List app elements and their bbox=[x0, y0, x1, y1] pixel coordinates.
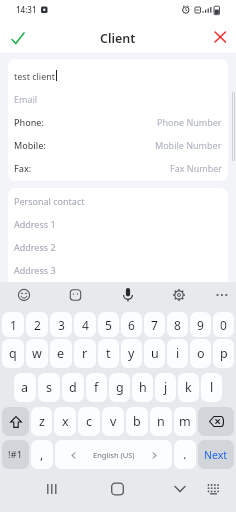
button[interactable]: w bbox=[26, 339, 48, 368]
staticText: 4 bbox=[82, 317, 89, 333]
button[interactable]: Personal contact bbox=[14, 189, 222, 212]
button[interactable]: h bbox=[132, 373, 153, 402]
staticText: h bbox=[139, 379, 147, 396]
staticText: English (US) bbox=[93, 450, 135, 460]
button[interactable]: l bbox=[201, 373, 222, 402]
button[interactable]: k bbox=[178, 373, 199, 402]
button[interactable]: j bbox=[155, 373, 176, 402]
staticText: b bbox=[133, 413, 141, 430]
button[interactable]: Mobile: bbox=[14, 133, 222, 156]
button[interactable]: x bbox=[54, 407, 76, 436]
staticText: Address 1 bbox=[14, 218, 56, 230]
staticText: s bbox=[46, 379, 52, 396]
staticText: Phone: bbox=[14, 116, 44, 128]
button[interactable]: Fax: bbox=[14, 156, 222, 179]
staticText: 9 bbox=[197, 317, 204, 333]
staticText: t bbox=[106, 345, 111, 362]
button[interactable]: Address 1 bbox=[14, 212, 222, 235]
button[interactable]: a bbox=[14, 373, 36, 402]
button[interactable]: 5 bbox=[98, 312, 119, 337]
button[interactable]: y bbox=[121, 339, 142, 368]
staticText: Address 2 bbox=[14, 241, 56, 253]
button[interactable]: c bbox=[78, 407, 100, 436]
staticText: y bbox=[128, 345, 135, 362]
button[interactable]: Address 2 bbox=[14, 235, 222, 258]
staticText: i bbox=[176, 345, 180, 362]
button[interactable]: Next bbox=[198, 440, 234, 469]
staticText: 1 bbox=[10, 317, 17, 333]
button[interactable]: Address 3 bbox=[14, 258, 222, 281]
button[interactable]: 9 bbox=[190, 312, 211, 337]
button[interactable]: e bbox=[50, 339, 72, 368]
staticText: c bbox=[86, 413, 93, 430]
staticText: Address 3 bbox=[14, 264, 56, 276]
staticText: m bbox=[179, 413, 191, 430]
staticText: Client bbox=[100, 30, 136, 47]
button[interactable]: z bbox=[31, 407, 52, 436]
button[interactable]: 6 bbox=[121, 312, 142, 337]
button[interactable]: q bbox=[2, 339, 24, 368]
button[interactable]: f bbox=[86, 373, 107, 402]
staticText: w bbox=[32, 345, 42, 362]
staticText: Phone Number bbox=[157, 116, 222, 128]
staticText: . bbox=[183, 446, 187, 463]
staticText: r bbox=[82, 345, 88, 362]
button[interactable]: Email bbox=[14, 87, 222, 110]
button[interactable]: . bbox=[174, 440, 196, 469]
staticText: a bbox=[21, 379, 29, 396]
staticText: Email bbox=[14, 93, 38, 105]
staticText: 6 bbox=[128, 317, 135, 333]
staticText: 5 bbox=[105, 317, 112, 333]
button[interactable]: u bbox=[144, 339, 165, 368]
staticText: v bbox=[110, 413, 117, 430]
button[interactable]: p bbox=[213, 339, 234, 368]
button[interactable]: , bbox=[31, 440, 53, 469]
staticText: u bbox=[151, 345, 159, 362]
staticText: 3 bbox=[58, 317, 65, 333]
button[interactable]: test client bbox=[14, 64, 222, 87]
button[interactable]: o bbox=[190, 339, 211, 368]
button[interactable] bbox=[214, 31, 227, 43]
staticText: q bbox=[9, 345, 17, 362]
staticText: 0 bbox=[220, 317, 227, 333]
staticText: d bbox=[69, 379, 77, 396]
staticText: 7 bbox=[151, 317, 158, 333]
button[interactable]: t bbox=[98, 339, 119, 368]
button[interactable] bbox=[2, 407, 29, 436]
staticText: Next bbox=[204, 448, 228, 462]
button[interactable]: 0 bbox=[213, 312, 234, 337]
staticText: !#1 bbox=[8, 448, 23, 461]
staticText: e bbox=[57, 345, 65, 362]
button[interactable] bbox=[198, 407, 234, 436]
staticText: n bbox=[157, 413, 165, 430]
staticText: k bbox=[185, 379, 192, 396]
staticText: o bbox=[197, 345, 205, 362]
button[interactable]: 4 bbox=[74, 312, 96, 337]
staticText: 14:31 bbox=[16, 4, 37, 15]
button[interactable]: b bbox=[126, 407, 148, 436]
staticText: z bbox=[39, 413, 45, 430]
staticText: test client bbox=[14, 70, 56, 82]
button[interactable]: n bbox=[150, 407, 172, 436]
button[interactable]: 7 bbox=[144, 312, 165, 337]
button[interactable]: !#1 bbox=[2, 440, 29, 469]
button[interactable]: English (US) bbox=[55, 440, 172, 469]
button[interactable]: 2 bbox=[26, 312, 48, 337]
button[interactable]: r bbox=[74, 339, 96, 368]
button[interactable]: 3 bbox=[50, 312, 72, 337]
staticText: Fax Number bbox=[170, 162, 222, 174]
staticText: 8 bbox=[174, 317, 181, 333]
button[interactable]: v bbox=[102, 407, 124, 436]
staticText: Fax: bbox=[14, 162, 32, 174]
button[interactable]: s bbox=[38, 373, 60, 402]
button[interactable]: 8 bbox=[167, 312, 188, 337]
staticText: 2 bbox=[34, 317, 41, 333]
button[interactable]: 1 bbox=[2, 312, 24, 337]
staticText: Mobile: bbox=[14, 139, 46, 151]
button[interactable]: Phone: bbox=[14, 110, 222, 133]
button[interactable]: m bbox=[174, 407, 196, 436]
button[interactable]: i bbox=[167, 339, 188, 368]
button[interactable]: g bbox=[109, 373, 130, 402]
staticText: l bbox=[210, 379, 214, 396]
button[interactable]: d bbox=[62, 373, 84, 402]
